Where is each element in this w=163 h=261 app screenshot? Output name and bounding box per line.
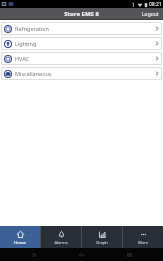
button[interactable]: Miscellaneous: [1, 67, 162, 80]
button[interactable]: HVAC: [1, 52, 162, 65]
button[interactable]: Logout: [138, 8, 163, 20]
staticText: Graph: [96, 240, 108, 245]
staticText: Store EMS 8: [64, 10, 99, 18]
staticText: 08:21: [149, 1, 162, 8]
button[interactable]: Home: [77, 250, 86, 259]
button[interactable]: Refrigeration: [1, 22, 162, 35]
button[interactable]: Recent apps: [125, 250, 134, 259]
staticText: Home: [14, 240, 26, 245]
button[interactable]: More: [123, 226, 163, 248]
staticText: Miscellaneous: [15, 70, 155, 77]
staticText: Refrigeration: [15, 25, 155, 32]
staticText: More: [138, 240, 148, 245]
button[interactable]: Lighting: [1, 37, 162, 50]
button[interactable]: Graph: [82, 226, 122, 248]
staticText: Alarms: [54, 240, 68, 245]
button[interactable]: Back: [29, 250, 38, 259]
staticText: Lighting: [15, 40, 155, 47]
staticText: HVAC: [15, 55, 155, 62]
staticText: Logout: [142, 11, 159, 18]
button[interactable]: Home: [0, 226, 40, 248]
button[interactable]: Alarms: [41, 226, 81, 248]
